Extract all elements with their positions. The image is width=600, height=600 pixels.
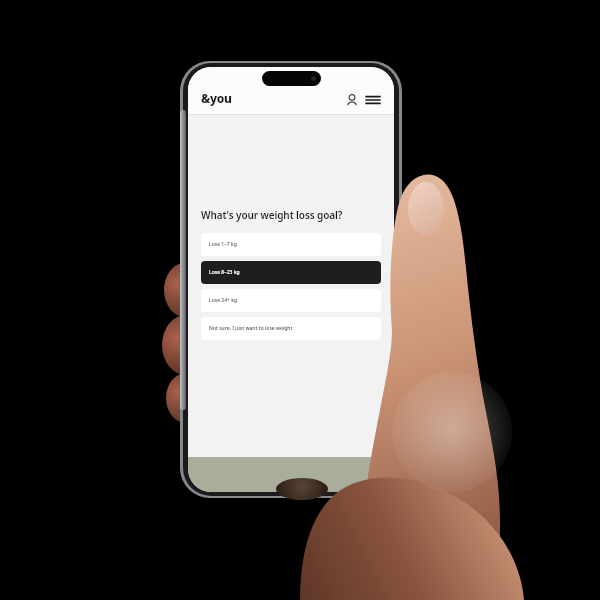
staticText: &you: [201, 90, 232, 106]
button[interactable]: Not sure, I just want to lose weight: [201, 317, 381, 340]
staticText: Lose 1–7 kg: [209, 241, 237, 248]
button[interactable]: &you: [201, 90, 232, 106]
staticText: Lose 24+ kg: [209, 297, 238, 304]
button[interactable]: Lose 24+ kg: [201, 289, 381, 312]
button[interactable]: Lose 1–7 kg: [201, 233, 381, 256]
staticText: Not sure, I just want to lose weight: [209, 325, 293, 332]
button[interactable]: Account: [345, 93, 359, 107]
staticText: Lose 8–23 kg: [209, 269, 240, 276]
staticText: What's your weight loss goal?: [201, 208, 343, 222]
button[interactable]: Lose 8–23 kg: [201, 261, 381, 284]
button[interactable]: Menu: [365, 93, 381, 107]
